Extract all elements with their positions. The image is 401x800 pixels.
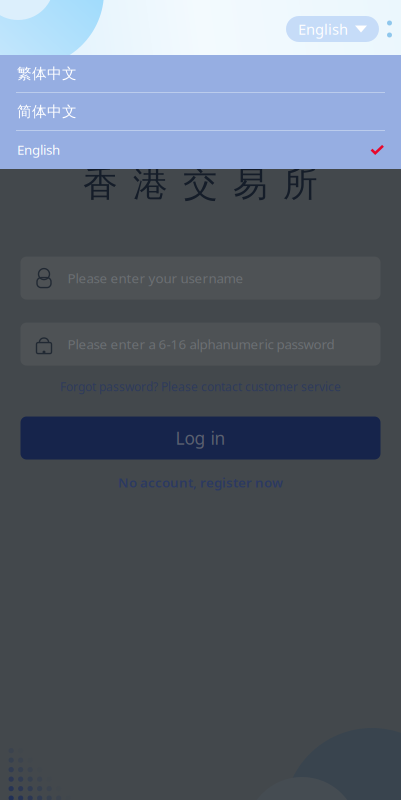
staticText: Please enter a 6-16 alphanumeric passwor… (67, 335, 334, 353)
staticText: 简体中文 (17, 102, 77, 120)
staticText: 香港交易所 (83, 163, 318, 206)
button[interactable]: Log in (20, 416, 380, 459)
button[interactable]: No account, register now (118, 473, 283, 491)
staticText: No account, register now (118, 473, 283, 491)
staticText: English (17, 141, 60, 158)
staticText: Please enter your username (67, 269, 243, 287)
staticText: Log in (175, 426, 225, 449)
button[interactable]: English (0, 131, 401, 169)
button[interactable]: English (286, 16, 379, 42)
staticText: 繁体中文 (17, 64, 77, 82)
button[interactable]: 简体中文 (0, 93, 401, 131)
staticText: English (298, 19, 348, 39)
button[interactable]: 繁体中文 (0, 55, 401, 93)
staticText: Forgot password? Please contact customer… (60, 379, 341, 394)
